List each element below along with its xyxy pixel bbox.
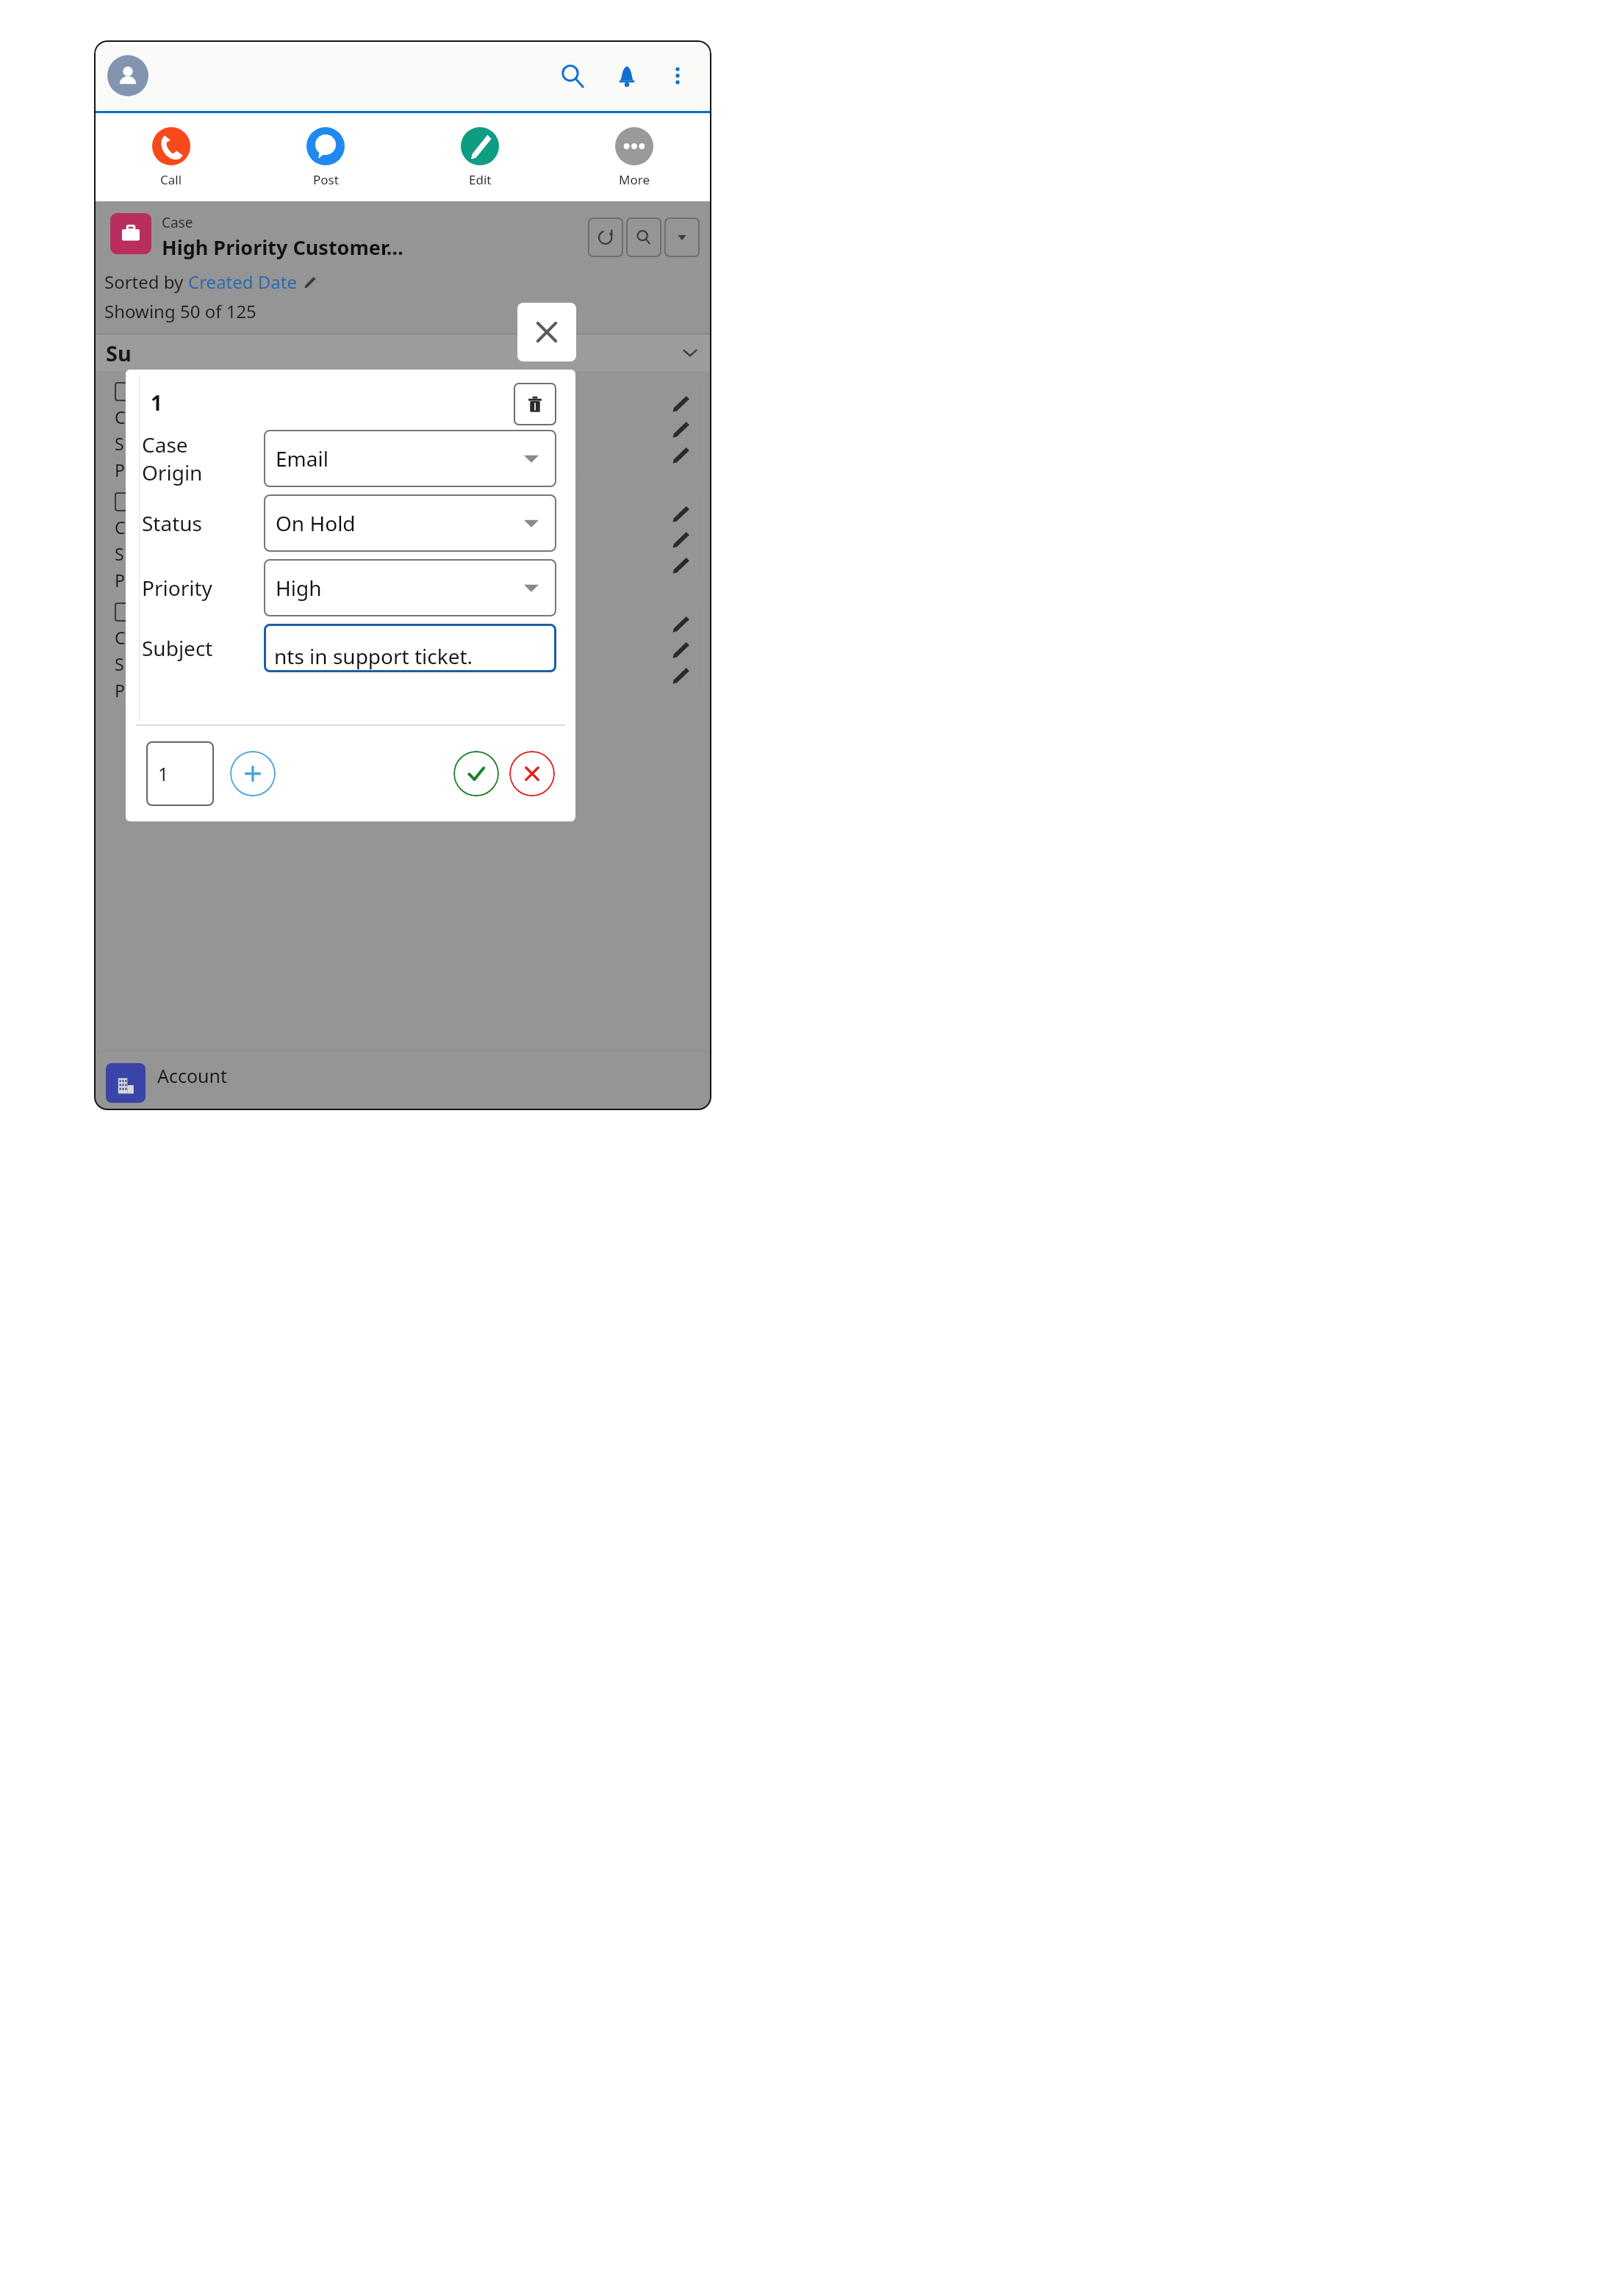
staticText: C (115, 406, 126, 428)
staticText: P (115, 679, 125, 698)
button[interactable]: High (264, 559, 556, 616)
staticText: Status (142, 509, 203, 537)
staticText: Priority (142, 574, 212, 602)
staticText: Case Origin (142, 431, 252, 486)
staticText: Showing 50 of 125 (104, 299, 256, 323)
staticText: P (115, 569, 125, 588)
staticText: S (115, 542, 124, 565)
staticText: High Priority Customer… (162, 234, 403, 261)
button[interactable]: Cancel (509, 751, 555, 796)
button[interactable]: Confirm (453, 751, 499, 796)
staticText: C (115, 516, 126, 539)
staticText: P (115, 458, 125, 478)
button[interactable]: More (557, 113, 711, 201)
staticText: Email (276, 445, 329, 472)
staticText: S (115, 652, 124, 675)
button[interactable]: On Hold (264, 494, 556, 552)
staticText: Sorted by (104, 270, 188, 294)
button[interactable]: Email (264, 430, 556, 487)
staticText: Call (160, 171, 182, 188)
button[interactable]: C (101, 595, 704, 698)
button[interactable]: Post (248, 113, 403, 201)
staticText: Post (313, 171, 339, 188)
staticText: Account (157, 1063, 228, 1088)
staticText: 1 (158, 761, 169, 786)
button[interactable]: 1 (146, 741, 214, 806)
button[interactable]: List options (664, 217, 700, 257)
staticText: Subject (142, 634, 213, 662)
staticText: S (115, 432, 124, 455)
button[interactable]: Notifications (604, 53, 650, 98)
staticText: Edit (469, 171, 492, 188)
button[interactable]: More options (657, 55, 698, 96)
staticText: More (619, 171, 650, 188)
button[interactable]: C (101, 375, 704, 478)
staticText: nts in support ticket. (274, 642, 473, 670)
button[interactable]: Call (94, 113, 248, 201)
button[interactable]: Search (550, 53, 595, 98)
staticText: On Hold (276, 509, 356, 537)
button[interactable]: Search list (626, 217, 661, 257)
button[interactable]: C (101, 485, 704, 588)
button[interactable]: Edit (403, 113, 557, 201)
staticText: 1 (151, 389, 163, 417)
button[interactable]: Profile (107, 55, 148, 96)
staticText: Case (162, 213, 193, 232)
button[interactable]: Created Date (188, 270, 297, 294)
staticText: Su (106, 339, 132, 367)
button[interactable]: Close (517, 303, 576, 361)
button[interactable]: Delete row (514, 383, 556, 425)
button[interactable]: Add row (230, 751, 276, 796)
button[interactable]: nts in support ticket. (264, 624, 556, 672)
button[interactable]: Refresh (588, 217, 623, 257)
staticText: High (276, 574, 322, 602)
staticText: C (115, 626, 126, 649)
